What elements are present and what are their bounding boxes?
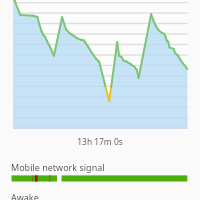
button[interactable]: Battery level history graph — [0, 0, 200, 133]
button[interactable]: Awake — [0, 182, 200, 200]
button[interactable]: 13h 17m 0s — [0, 133, 200, 154]
staticText: Mobile network signal — [11, 161, 105, 173]
staticText: 13h 17m 0s — [77, 136, 123, 147]
button[interactable]: Mobile network signal — [0, 154, 200, 182]
staticText: Awake — [11, 191, 39, 200]
